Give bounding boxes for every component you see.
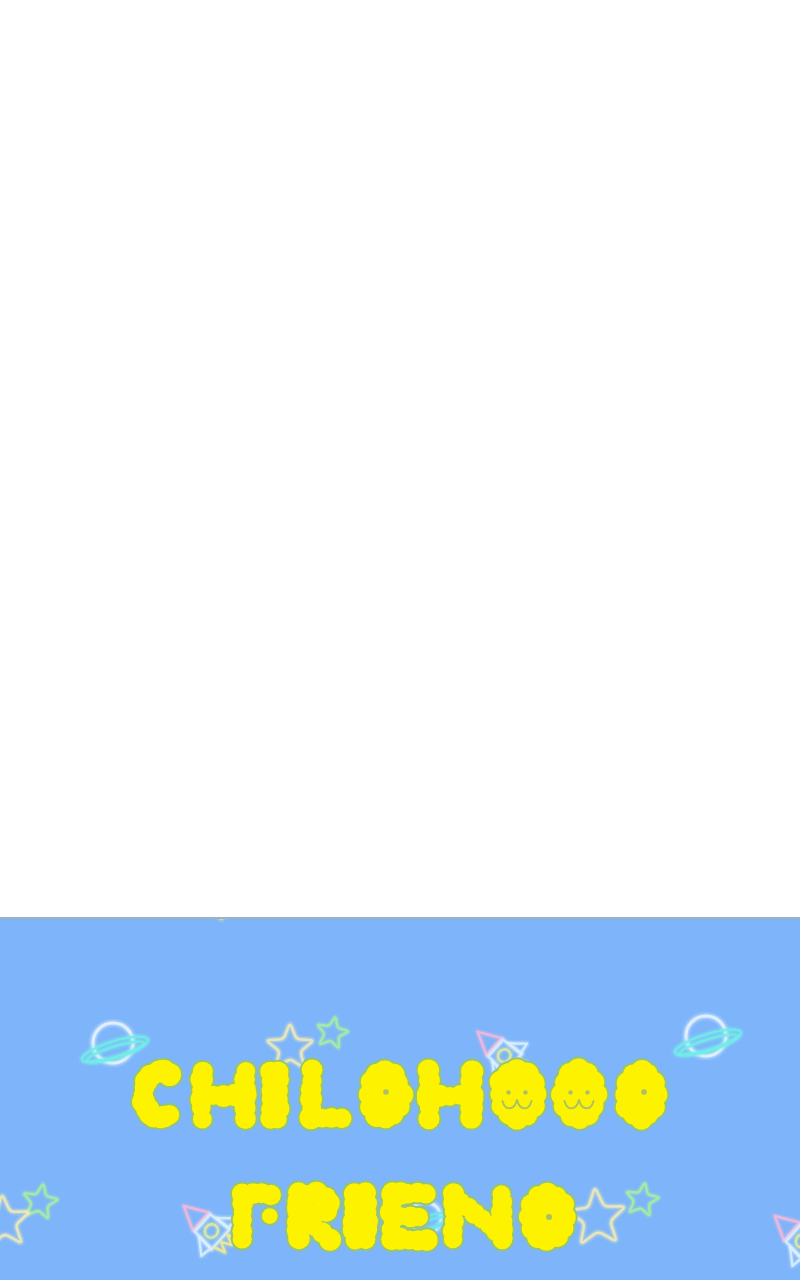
- button[interactable]: Childhood Friend title card: [0, 919, 800, 1280]
- button[interactable]: Episode panel: [0, 0, 800, 919]
